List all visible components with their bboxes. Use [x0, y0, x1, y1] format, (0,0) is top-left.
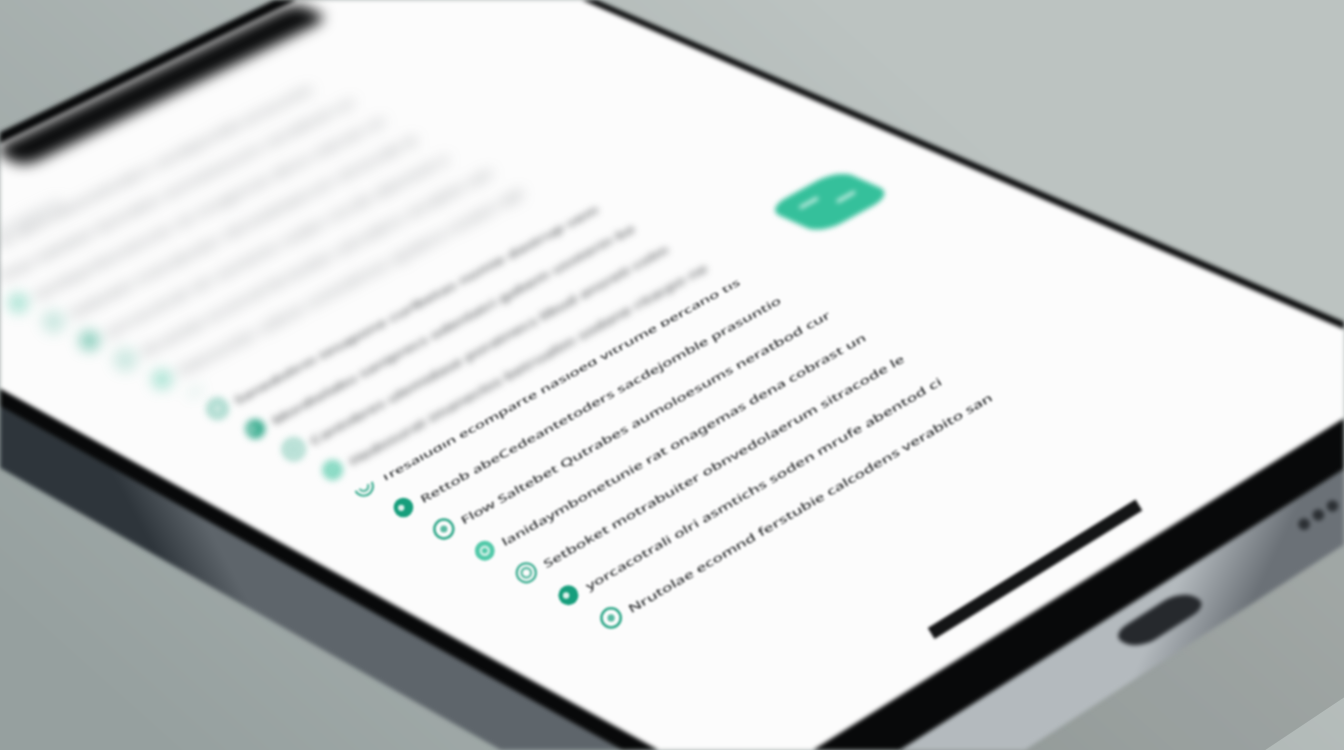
- button[interactable]: Phone mockup showing conversations list: [0, 0, 1344, 750]
